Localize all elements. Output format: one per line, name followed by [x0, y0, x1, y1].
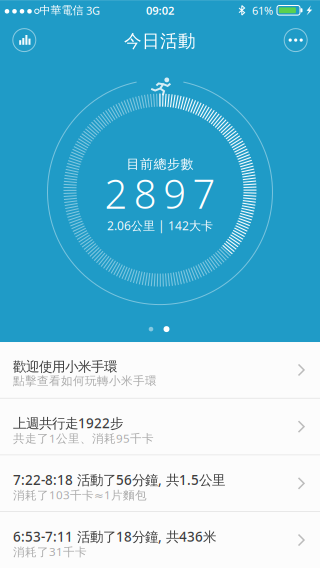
staticText: 今日活動	[124, 30, 196, 52]
button[interactable]: 歡迎使用小米手環	[0, 342, 320, 398]
staticText: 中華電信	[39, 4, 83, 17]
staticText: 上週共行走1922步	[13, 414, 123, 432]
staticText: 61%	[252, 3, 273, 18]
button[interactable]	[149, 326, 169, 332]
staticText: 2.06公里 | 142大卡	[107, 218, 213, 233]
staticText: 共走了1公里、消耗95千卡	[13, 430, 154, 446]
staticText: 歡迎使用小米手環	[13, 359, 117, 375]
button[interactable]	[284, 29, 307, 52]
staticText: 7:22-8:18 活動了56分鐘, 共1.5公里	[13, 471, 225, 489]
staticText: 目前總步數	[127, 156, 193, 172]
staticText: 消耗了103千卡≈1片麵包	[13, 487, 147, 503]
staticText: 2897	[105, 167, 215, 220]
button[interactable]: 6:53-7:11 活動了18分鐘, 共436米	[0, 512, 320, 568]
staticText: 點擊查看如何玩轉小米手環	[13, 374, 157, 388]
button[interactable]	[13, 29, 36, 52]
staticText: 6:53-7:11 活動了18分鐘, 共436米	[13, 527, 216, 545]
button[interactable]: 7:22-8:18 活動了56分鐘, 共1.5公里	[0, 455, 320, 511]
staticText: 3G	[86, 3, 100, 18]
staticText: 消耗了31千卡	[13, 544, 87, 559]
staticText: 09:02	[146, 3, 174, 18]
button[interactable]: 上週共行走1922步	[0, 399, 320, 454]
